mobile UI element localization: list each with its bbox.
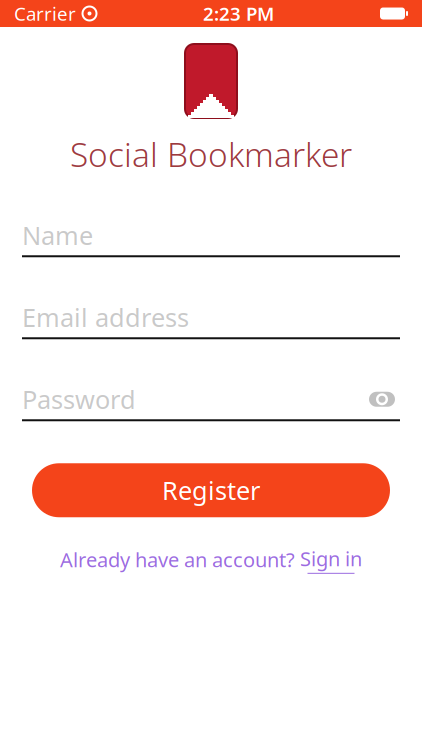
staticText: Register	[162, 473, 260, 507]
staticText: Name	[22, 218, 93, 252]
staticText: Sign in	[300, 545, 362, 572]
staticText: Email address	[22, 300, 189, 334]
button[interactable]: Already have an account?	[60, 545, 362, 574]
staticText: 2:23 PM	[203, 1, 274, 26]
staticText: Already have an account?	[60, 546, 295, 573]
button[interactable]: Show password	[364, 386, 400, 412]
staticText: Password	[22, 382, 136, 416]
staticText: Social Bookmarker	[70, 132, 352, 176]
staticText: Carrier	[14, 1, 76, 26]
button[interactable]: Register	[32, 463, 390, 517]
